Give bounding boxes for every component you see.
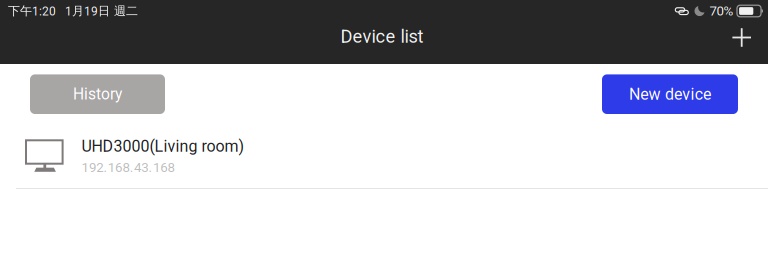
staticText: 192.168.43.168	[82, 160, 174, 175]
button[interactable]: UHD3000(Living room)	[0, 126, 768, 189]
button[interactable]: History	[30, 74, 165, 114]
button[interactable]: New device	[602, 74, 738, 114]
staticText: UHD3000(Living room)	[82, 137, 245, 156]
staticText: History	[73, 85, 122, 103]
button[interactable]: Add device	[724, 21, 759, 52]
staticText: 70%	[709, 3, 733, 19]
staticText: Device list	[340, 26, 423, 47]
staticText: New device	[629, 85, 711, 104]
staticText: 下午1:20 1月19日 週二	[8, 3, 138, 18]
